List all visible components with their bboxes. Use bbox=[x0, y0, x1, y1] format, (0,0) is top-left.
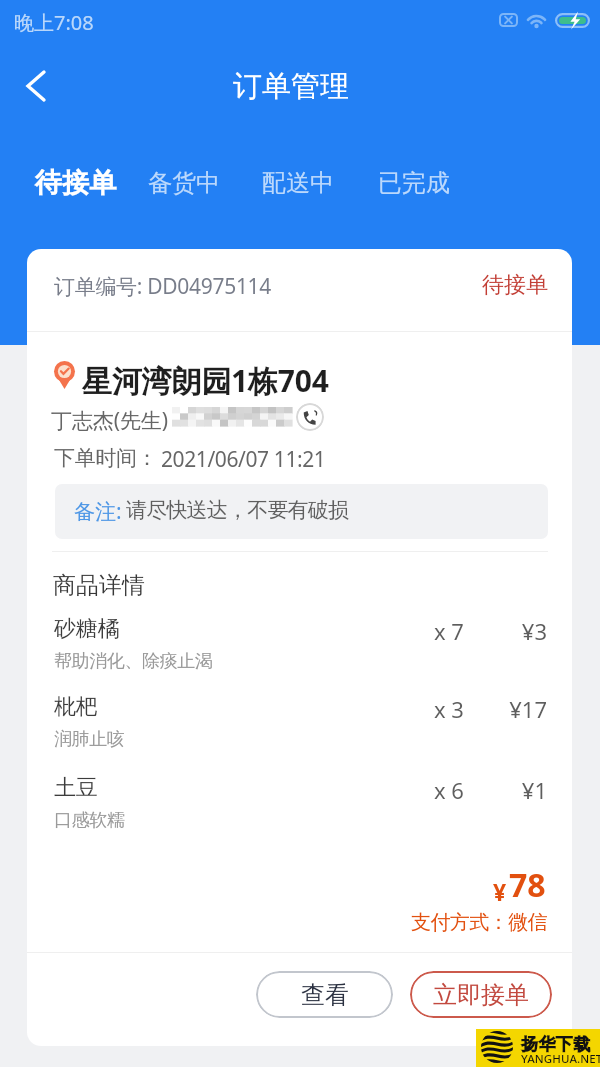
staticText: 订单编号: DD04975114 bbox=[54, 272, 272, 301]
staticText: 润肺止咳 bbox=[54, 728, 125, 751]
staticText: 扬华下载 bbox=[521, 1034, 591, 1055]
button[interactable]: 已完成 bbox=[368, 148, 460, 218]
staticText: 枇杷 bbox=[54, 693, 98, 721]
staticText: ¥1 bbox=[467, 775, 547, 805]
staticText: 备货中 bbox=[148, 168, 220, 198]
staticText: 请尽快送达，不要有破损 bbox=[126, 497, 349, 523]
button[interactable]: Back bbox=[0, 36, 72, 136]
staticText: 待接单 bbox=[35, 166, 116, 200]
staticText: 立即接单 bbox=[433, 980, 529, 1010]
staticText: x 7 bbox=[434, 616, 464, 646]
staticText: 星河湾朗园1栋704 bbox=[82, 360, 329, 401]
staticText: 待接单 bbox=[482, 271, 548, 299]
staticText: 下单时间： bbox=[54, 445, 158, 471]
staticText: 支付方式：微信 bbox=[411, 910, 547, 935]
staticText: 商品详情 bbox=[53, 571, 145, 600]
staticText: 帮助消化、除痰止渴 bbox=[54, 650, 213, 673]
button[interactable]: 查看 bbox=[256, 971, 393, 1018]
button[interactable]: 备货中 bbox=[138, 148, 230, 218]
staticText: x 3 bbox=[434, 694, 464, 724]
staticText: 丁志杰(先生) bbox=[51, 406, 168, 435]
staticText: 备注: bbox=[74, 497, 122, 526]
staticText: 配送中 bbox=[262, 168, 334, 198]
staticText: ¥ bbox=[493, 876, 507, 907]
staticText: 晚上7:08 bbox=[14, 9, 94, 36]
button[interactable]: 待接单 bbox=[25, 148, 126, 218]
staticText: 订单管理 bbox=[233, 68, 349, 105]
staticText: ¥3 bbox=[467, 616, 547, 646]
staticText: 查看 bbox=[301, 980, 349, 1010]
button[interactable]: Call customer bbox=[296, 403, 324, 431]
staticText: 土豆 bbox=[54, 774, 98, 802]
button[interactable]: 立即接单 bbox=[410, 971, 552, 1018]
staticText: 口感软糯 bbox=[54, 809, 125, 832]
button[interactable]: 配送中 bbox=[252, 148, 344, 218]
staticText: YANGHUA.NET bbox=[521, 1051, 600, 1067]
staticText: 砂糖橘 bbox=[54, 615, 120, 643]
staticText: 78 bbox=[509, 863, 546, 907]
staticText: ¥17 bbox=[467, 694, 547, 724]
staticText: 2021/06/07 11:21 bbox=[161, 445, 326, 474]
staticText: 已完成 bbox=[378, 168, 450, 198]
staticText: x 6 bbox=[434, 775, 464, 805]
